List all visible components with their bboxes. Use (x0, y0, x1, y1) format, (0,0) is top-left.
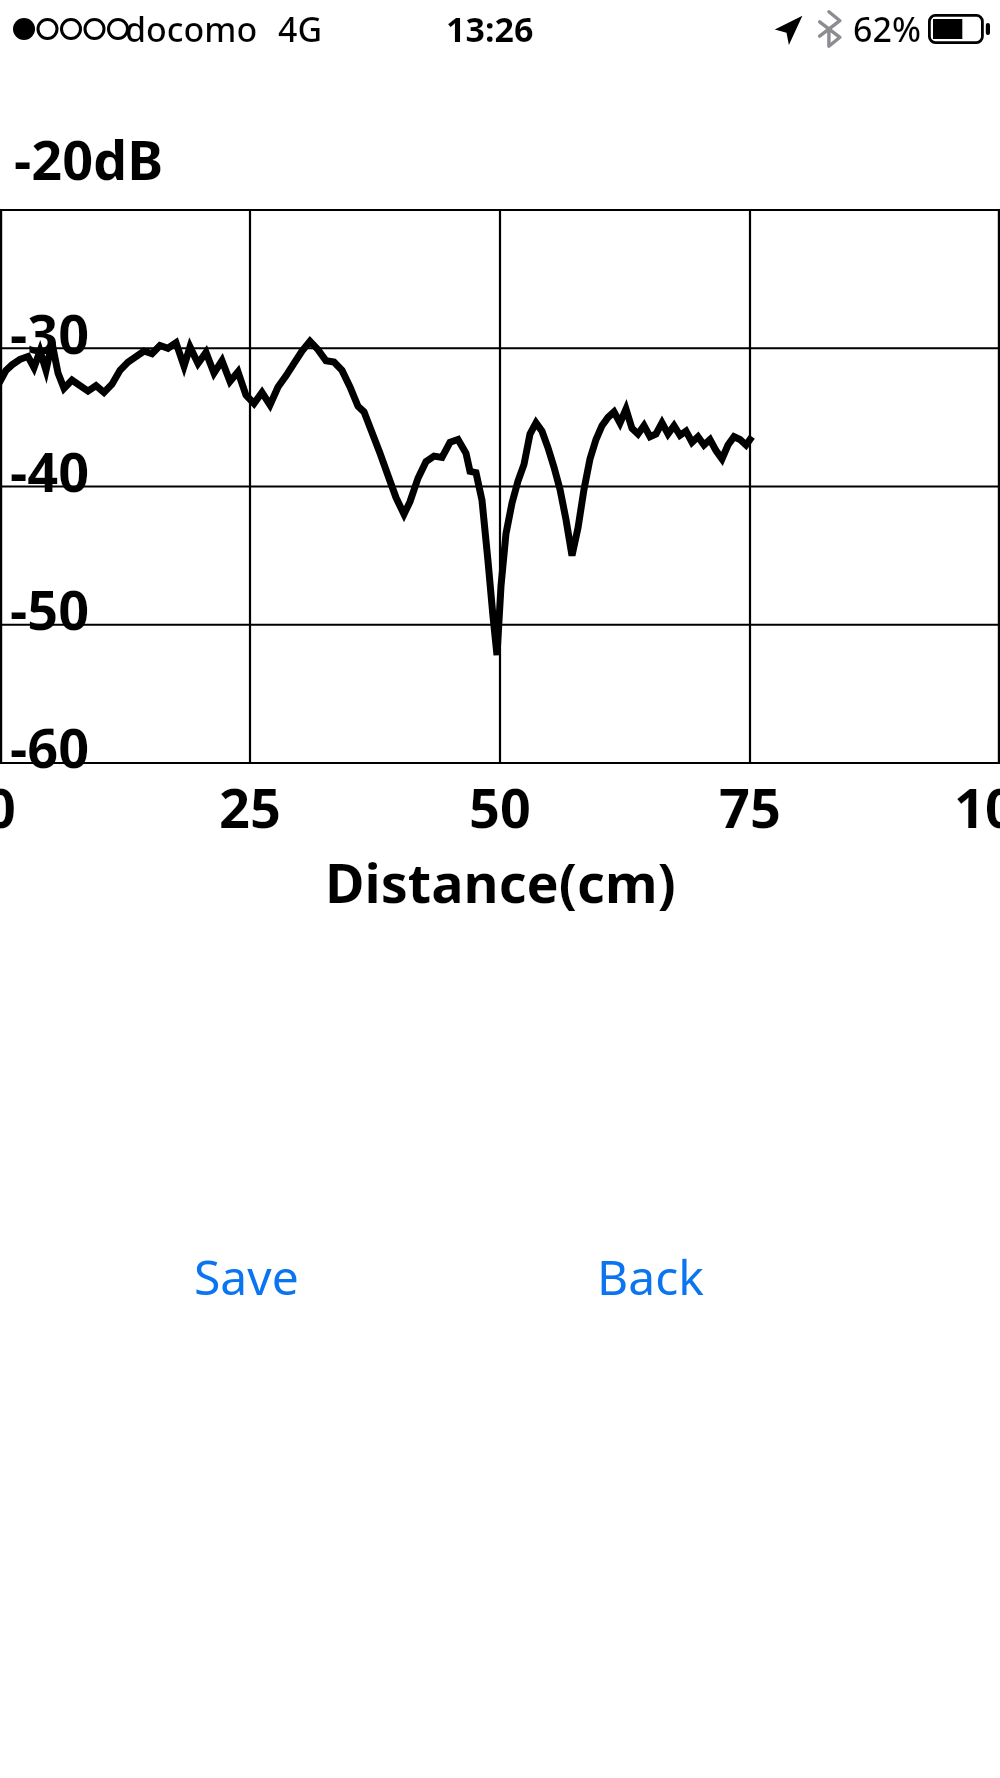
staticText: 4G (278, 6, 323, 52)
staticText: -20dB (14, 122, 164, 196)
staticText: 100 (954, 770, 1000, 844)
staticText: -60 (10, 710, 90, 784)
button[interactable]: Save (170, 1230, 323, 1323)
staticText: 13:26 (446, 6, 534, 52)
staticText: 50 (469, 770, 531, 844)
button[interactable]: Back (573, 1230, 728, 1323)
staticText: docomo (125, 6, 258, 52)
staticText: 25 (219, 770, 281, 844)
staticText: Back (597, 1244, 704, 1309)
staticText: Distance(cm) (325, 845, 676, 919)
staticText: 75 (719, 770, 781, 844)
staticText: 62% (853, 6, 921, 52)
staticText: -30 (10, 296, 90, 370)
staticText: Save (194, 1244, 299, 1309)
staticText: 0 (0, 770, 16, 844)
staticText: -40 (10, 434, 90, 508)
staticText: -50 (10, 572, 90, 646)
